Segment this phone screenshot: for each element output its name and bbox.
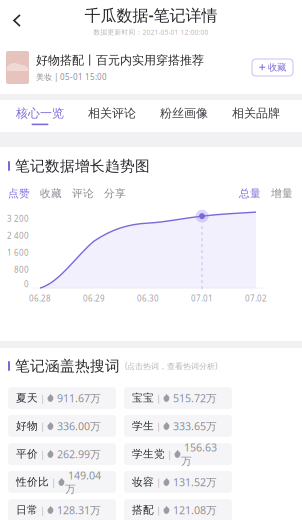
- staticText: 夏天: [16, 391, 38, 405]
- staticText: 0: [24, 279, 29, 289]
- staticText: 333.65万: [170, 419, 217, 433]
- button[interactable]: 日常: [8, 499, 116, 520]
- staticText: 相关品牌: [232, 106, 280, 120]
- button[interactable]: 核心一览: [4, 100, 76, 132]
- staticText: 笔记涵盖热搜词: [15, 357, 120, 375]
- staticText: 131.52万: [170, 475, 217, 489]
- staticText: 宝宝: [132, 391, 154, 405]
- staticText: |: [38, 504, 47, 516]
- staticText: 515.72万: [170, 391, 217, 405]
- button[interactable]: 搭配: [124, 499, 232, 520]
- staticText: 128.31万: [54, 503, 101, 517]
- staticText: |: [154, 504, 163, 516]
- staticText: 336.00万: [54, 419, 101, 433]
- button[interactable]: 好物: [8, 415, 116, 437]
- staticText: |: [154, 392, 163, 404]
- staticText: 评论: [72, 187, 94, 200]
- staticText: 好物: [16, 419, 38, 433]
- staticText: |: [49, 476, 58, 488]
- staticText: 121.08万: [170, 503, 217, 517]
- staticText: |: [38, 392, 47, 404]
- button[interactable]: 性价比: [8, 471, 116, 493]
- staticText: 06.30: [137, 293, 159, 304]
- staticText: 收藏: [40, 187, 62, 200]
- staticText: 收藏: [268, 62, 286, 73]
- staticText: 千瓜数据-笔记详情: [84, 4, 217, 26]
- staticText: 笔记数据增长趋势图: [15, 157, 150, 175]
- staticText: 学生: [132, 419, 154, 433]
- staticText: 1 600: [7, 247, 29, 258]
- staticText: 2 400: [7, 230, 29, 241]
- staticText: 日常: [16, 503, 38, 517]
- staticText: 妆容: [132, 475, 154, 489]
- staticText: |: [38, 448, 47, 460]
- staticText: 增量: [271, 187, 293, 200]
- button[interactable]: 相关评论: [76, 100, 148, 132]
- staticText: 平价: [16, 447, 38, 461]
- button[interactable]: 学生党: [124, 443, 232, 465]
- staticText: |: [154, 420, 163, 432]
- staticText: 美妆 | 05-01 15:00: [36, 72, 107, 82]
- staticText: 核心一览: [16, 106, 64, 120]
- staticText: |: [165, 448, 174, 460]
- staticText: 点赞: [8, 187, 30, 200]
- staticText: 数据更新时间：2021-05-01 12:00:00: [93, 28, 208, 37]
- staticText: 搭配: [132, 503, 154, 517]
- staticText: 07.02: [245, 293, 267, 304]
- button[interactable]: 粉丝画像: [148, 100, 220, 132]
- staticText: 911.67万: [54, 391, 101, 405]
- staticText: 学生党: [132, 447, 165, 461]
- staticText: (点击热词，查看热词分析): [125, 361, 217, 371]
- staticText: 相关评论: [88, 106, 136, 120]
- button[interactable]: 收藏: [40, 187, 62, 200]
- staticText: 800: [14, 264, 29, 275]
- staticText: 分享: [104, 187, 126, 200]
- staticText: 3 200: [7, 213, 29, 224]
- button[interactable]: 收藏: [252, 59, 293, 76]
- button[interactable]: 夏天: [8, 387, 116, 409]
- button[interactable]: 评论: [72, 187, 94, 200]
- staticText: 07.01: [191, 293, 213, 304]
- staticText: |: [38, 420, 47, 432]
- button[interactable]: 学生: [124, 415, 232, 437]
- staticText: 149.04万: [65, 468, 101, 496]
- button[interactable]: 平价: [8, 443, 116, 465]
- staticText: 总量: [239, 187, 261, 200]
- button[interactable]: 增量: [271, 187, 293, 200]
- button[interactable]: Back: [0, 0, 34, 41]
- staticText: 156.63万: [181, 440, 217, 468]
- staticText: 06.29: [83, 293, 105, 304]
- button[interactable]: 妆容: [124, 471, 232, 493]
- staticText: 性价比: [16, 475, 49, 489]
- staticText: 262.99万: [54, 447, 101, 461]
- button[interactable]: 宝宝: [124, 387, 232, 409]
- staticText: |: [154, 476, 163, 488]
- button[interactable]: 分享: [104, 187, 126, 200]
- button[interactable]: 点赞: [8, 187, 30, 200]
- staticText: 好物搭配丨百元内实用穿搭推荐: [36, 53, 204, 67]
- staticText: 粉丝画像: [160, 106, 208, 120]
- button[interactable]: 相关品牌: [220, 100, 292, 132]
- staticText: 06.28: [29, 293, 51, 304]
- button[interactable]: 总量: [239, 187, 261, 200]
